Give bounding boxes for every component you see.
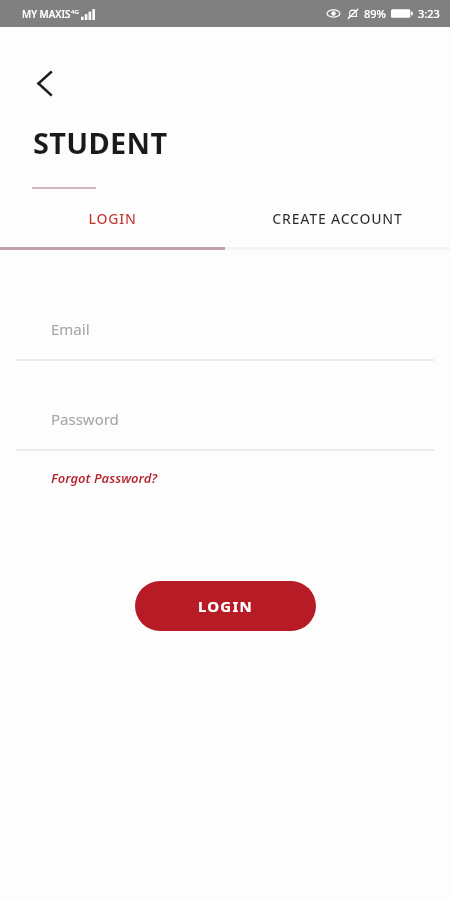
staticText: 3:23 (418, 6, 440, 21)
staticText: Forgot Password? (51, 469, 158, 487)
button[interactable]: CREATE ACCOUNT (225, 190, 450, 247)
staticText: STUDENT (33, 123, 168, 162)
button[interactable]: Back (26, 65, 62, 101)
staticText: LOGIN (88, 209, 137, 228)
staticText: Password (51, 409, 119, 429)
button[interactable]: LOGIN (0, 190, 225, 247)
staticText: LOGIN (198, 596, 253, 616)
button[interactable]: Password (0, 402, 450, 436)
staticText: CREATE ACCOUNT (272, 209, 403, 228)
staticText: 89% (364, 6, 386, 21)
staticText: Email (51, 319, 90, 339)
button[interactable]: LOGIN (135, 581, 316, 631)
button[interactable]: Email (0, 312, 450, 346)
staticText: MY MAXIS (22, 7, 71, 21)
button[interactable]: Forgot Password? (40, 463, 169, 493)
staticText: 4G (71, 8, 79, 16)
